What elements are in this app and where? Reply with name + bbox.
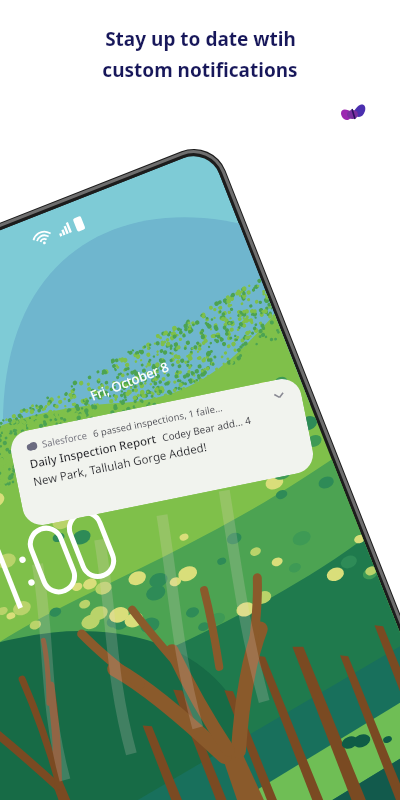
staticText: Daily Inspection Report — [28, 431, 158, 472]
button[interactable]: Fri, October 8 — [88, 357, 171, 405]
button[interactable]: Salesforce — [7, 375, 317, 529]
staticText: Salesforce — [41, 429, 88, 451]
staticText: 6 passed inspections, 1 faile… — [92, 401, 224, 440]
staticText: New Park, Tallulah Gorge Added! — [32, 439, 208, 490]
staticText: Fri, October 8 — [88, 357, 171, 405]
staticText: custom notifications — [102, 57, 298, 83]
staticText: Codey Bear add… 4 — [161, 413, 253, 445]
staticText: Stay up to date wtih — [105, 26, 296, 52]
button[interactable]: Expand notification — [270, 386, 289, 405]
